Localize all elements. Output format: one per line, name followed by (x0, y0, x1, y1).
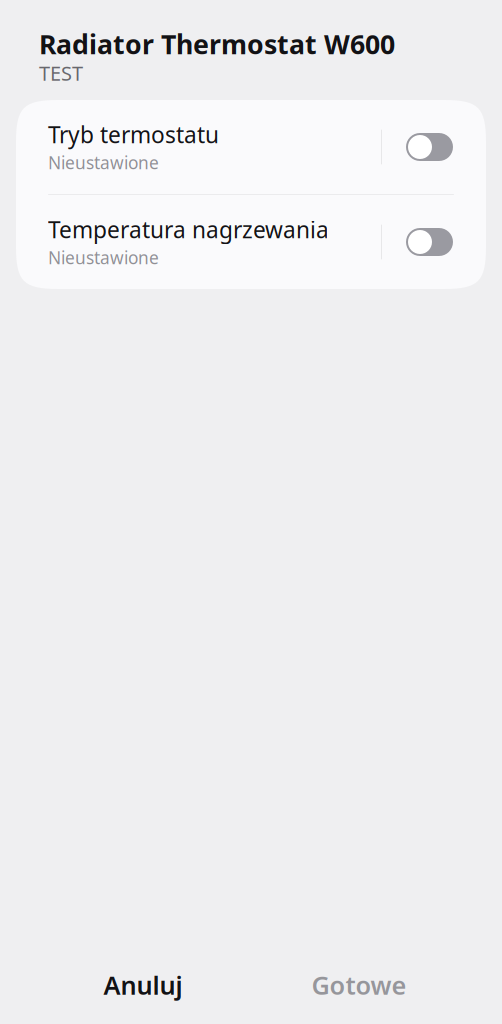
staticText: Temperatura nagrzewania (48, 214, 329, 244)
staticText: Radiator Thermostat W600 (39, 26, 395, 62)
button[interactable]: Anuluj (43, 957, 243, 1013)
staticText: Nieustawione (48, 151, 159, 174)
staticText: Nieustawione (48, 246, 159, 269)
staticText: TEST (39, 60, 83, 86)
button[interactable]: Temperatura nagrzewania (16, 195, 486, 289)
staticText: Anuluj (103, 968, 182, 1002)
button[interactable]: Gotowe (259, 957, 459, 1013)
button[interactable]: Tryb termostatu (16, 100, 486, 194)
staticText: Gotowe (311, 968, 406, 1002)
staticText: Tryb termostatu (48, 119, 219, 149)
